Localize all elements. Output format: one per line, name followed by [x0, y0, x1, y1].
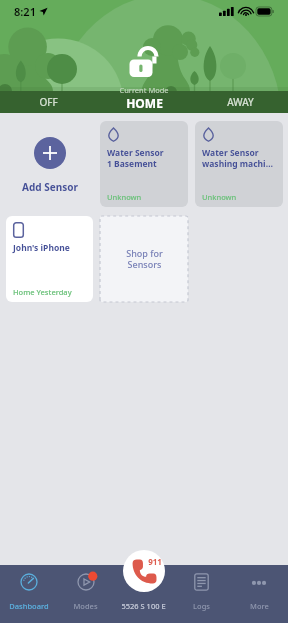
staticText: AWAY [227, 95, 254, 109]
staticText: OFF [39, 95, 58, 109]
staticText: Unknown [202, 192, 237, 202]
staticText: More [250, 601, 269, 611]
staticText: John's iPhone [13, 242, 70, 254]
staticText: Water Sensor 1 Basement [107, 147, 164, 169]
staticText: Home Yesterday [13, 287, 72, 297]
staticText: Logs [193, 601, 210, 611]
staticText: Dashboard [9, 601, 49, 611]
staticText: Unknown [107, 192, 142, 202]
staticText: 5526 S 100 E [121, 601, 166, 611]
staticText: Shop for Sensors [126, 247, 163, 271]
button[interactable]: Current Mode [119, 85, 169, 111]
button[interactable]: Logs [172, 565, 230, 611]
button[interactable]: Shop for Sensors [100, 216, 188, 302]
staticText: Water Sensor washing machi… [202, 147, 273, 169]
button[interactable]: Modes [57, 565, 114, 611]
button[interactable]: Water Sensor 1 Basement [100, 121, 188, 207]
button[interactable]: AWAY [192, 91, 288, 113]
staticText: HOME [126, 95, 163, 111]
button[interactable]: OFF [0, 91, 96, 113]
button[interactable]: More [230, 565, 288, 611]
button[interactable]: Call 911 [123, 550, 165, 592]
button[interactable]: Water Sensor washing machi… [195, 121, 283, 207]
button[interactable]: Dashboard [0, 565, 57, 611]
staticText: Current Mode [119, 85, 169, 95]
staticText: 911 [148, 556, 162, 567]
staticText: Add Sensor [22, 180, 78, 194]
button[interactable]: Add Sensor [6, 121, 93, 207]
staticText: 8:21 [14, 4, 36, 19]
button[interactable]: John's iPhone [6, 216, 93, 302]
staticText: Modes [73, 601, 98, 611]
